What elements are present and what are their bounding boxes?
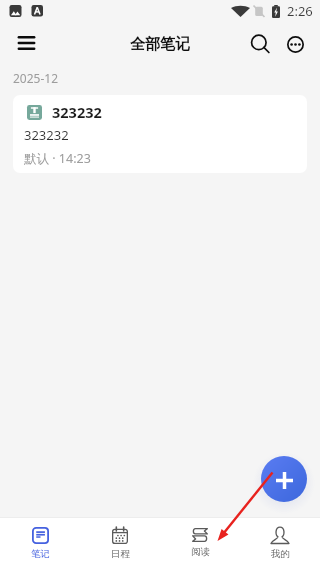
button[interactable]: 323232 (13, 95, 307, 173)
staticText: 2:26 (287, 2, 313, 20)
button[interactable]: 我的 (240, 518, 320, 568)
button[interactable]: 笔记 (0, 518, 80, 568)
staticText: 全部笔记 (130, 35, 190, 54)
button[interactable]: Add note (261, 456, 307, 502)
button[interactable]: 日程 (80, 518, 160, 568)
button[interactable]: Search (245, 29, 275, 59)
staticText: 323232 (24, 126, 69, 144)
button[interactable]: 阅读 (160, 518, 240, 568)
staticText: 日程 (111, 548, 130, 560)
staticText: 默认 · 14:23 (24, 150, 91, 167)
staticText: 笔记 (31, 548, 50, 560)
button[interactable]: Menu (13, 31, 39, 57)
staticText: 我的 (271, 548, 290, 560)
button[interactable]: More options (280, 29, 310, 59)
staticText: 323232 (52, 102, 102, 122)
staticText: 2025-12 (13, 70, 59, 86)
staticText: 阅读 (191, 546, 210, 558)
